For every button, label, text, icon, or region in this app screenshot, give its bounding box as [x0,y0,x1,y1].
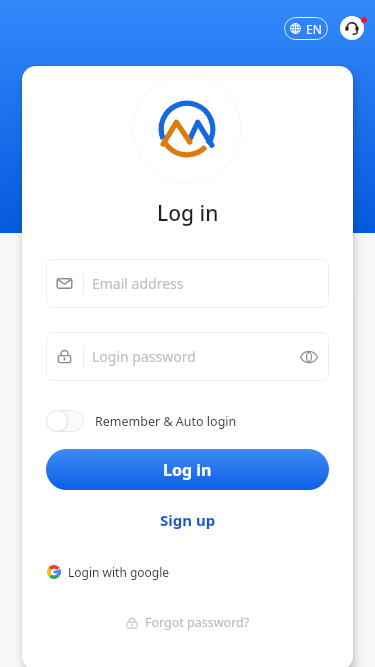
staticText: Forgot password? [145,614,250,631]
button[interactable]: Remember & Auto login [46,410,237,432]
button[interactable]: Login password [46,332,329,381]
staticText: Log in [163,459,212,481]
staticText: Remember & Auto login [95,413,237,430]
staticText: Email address [92,274,184,293]
staticText: Login password [92,347,196,366]
staticText: Login with google [68,564,170,580]
button[interactable]: Login with google [47,564,170,580]
staticText: Log in [157,199,219,228]
button[interactable]: Customer support [336,12,368,44]
staticText: EN [306,21,322,37]
button[interactable]: Email address [46,259,329,308]
button[interactable]: EN [284,17,328,40]
staticText: Sign up [160,510,216,530]
button[interactable]: Sign up [148,506,228,534]
button[interactable]: Log in [46,449,329,490]
button[interactable]: Show password [289,337,329,377]
button[interactable]: Forgot password? [122,611,253,634]
